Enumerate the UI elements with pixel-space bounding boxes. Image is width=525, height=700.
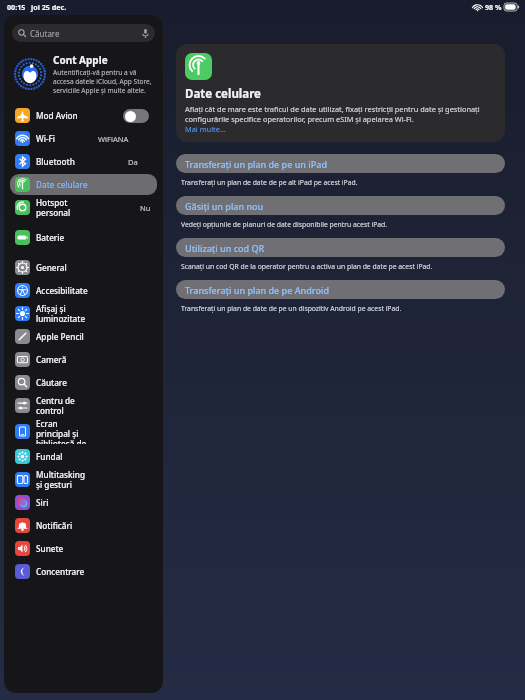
staticText: Nu — [140, 203, 151, 213]
button[interactable]: Hotspot personal — [10, 197, 157, 218]
button[interactable]: Wi-Fi — [10, 128, 157, 149]
button[interactable]: Căutare — [12, 24, 155, 42]
staticText: Utilizați un cod QR — [185, 242, 265, 254]
staticText: Transferați un plan de pe Android — [185, 284, 329, 296]
staticText: Centru de control — [36, 395, 93, 416]
button[interactable]: Date celulare — [10, 174, 157, 195]
staticText: Fundal — [36, 451, 63, 462]
button[interactable]: Date celulare — [176, 44, 505, 142]
button[interactable]: Concentrare — [10, 561, 157, 582]
button[interactable]: Accesibilitate — [10, 280, 157, 301]
staticText: Transferați un plan de date de pe alt iP… — [181, 178, 358, 187]
button[interactable]: Mod Avion toggle — [123, 109, 149, 123]
staticText: Wi-Fi — [36, 133, 56, 144]
button[interactable]: Utilizați un cod QR — [176, 238, 505, 257]
staticText: Cont Apple — [53, 53, 108, 67]
staticText: Găsiți un plan nou — [185, 200, 264, 212]
staticText: Siri — [36, 497, 49, 508]
staticText: Autentificați-vă pentru a vă accesa date… — [53, 68, 154, 95]
button[interactable]: Bluetooth — [10, 151, 157, 172]
staticText: Hotspot personal — [36, 197, 88, 218]
button[interactable]: Sunete — [10, 538, 157, 559]
button[interactable]: Transferați un plan de pe un iPad — [176, 154, 505, 173]
staticText: Sunete — [36, 543, 64, 554]
button[interactable]: Cont Apple — [4, 50, 163, 98]
button[interactable]: Siri — [10, 492, 157, 513]
staticText: Mod Avion — [36, 110, 78, 121]
button[interactable]: Căutare — [10, 372, 157, 393]
staticText: joi 25 dec. — [31, 2, 67, 12]
staticText: Notificări — [36, 520, 73, 531]
staticText: WiFiANA — [98, 134, 129, 144]
staticText: 00:15 — [7, 2, 26, 12]
staticText: Accesibilitate — [36, 285, 88, 296]
staticText: 98 % — [485, 2, 502, 12]
staticText: Da — [128, 157, 138, 167]
button[interactable]: Baterie — [10, 227, 157, 248]
button[interactable]: General — [10, 257, 157, 278]
button[interactable]: Găsiți un plan nou — [176, 196, 505, 215]
staticText: Aflați cât de mare este traficul de date… — [185, 104, 496, 124]
staticText: Multitasking și gesturi — [36, 469, 93, 490]
staticText: Date celulare — [185, 86, 261, 102]
button[interactable]: Mai multe... — [185, 124, 226, 134]
button[interactable]: Cameră — [10, 349, 157, 370]
button[interactable]: Fundal — [10, 446, 157, 467]
button[interactable]: Afișaj și luminozitate — [10, 303, 157, 324]
staticText: Bluetooth — [36, 156, 75, 167]
button[interactable]: Apple Pencil — [10, 326, 157, 347]
button[interactable]: Ecran principal și bibliotecă de aplicaț… — [10, 418, 157, 444]
staticText: General — [36, 262, 67, 273]
button[interactable]: Notificări — [10, 515, 157, 536]
staticText: Vedeți opțiunile de planuri de date disp… — [181, 220, 388, 229]
button[interactable]: Transferați un plan de pe Android — [176, 280, 505, 299]
staticText: Căutare — [30, 28, 60, 39]
staticText: Căutare — [36, 377, 67, 388]
button[interactable]: Multitasking și gesturi — [10, 469, 157, 490]
staticText: Cameră — [36, 354, 67, 365]
staticText: Baterie — [36, 232, 65, 243]
staticText: Afișaj și luminozitate — [36, 303, 93, 324]
staticText: Transferați un plan de date de pe un dis… — [181, 304, 402, 313]
staticText: Transferați un plan de pe un iPad — [185, 158, 327, 170]
staticText: Ecran principal și bibliotecă de aplicaț… — [36, 418, 93, 444]
staticText: Scanați un cod QR de la operator pentru … — [181, 262, 433, 271]
staticText: Concentrare — [36, 566, 85, 577]
button[interactable]: Mod Avion — [10, 105, 157, 126]
button[interactable]: Centru de control — [10, 395, 157, 416]
staticText: Apple Pencil — [36, 331, 84, 342]
staticText: Date celulare — [36, 179, 88, 190]
